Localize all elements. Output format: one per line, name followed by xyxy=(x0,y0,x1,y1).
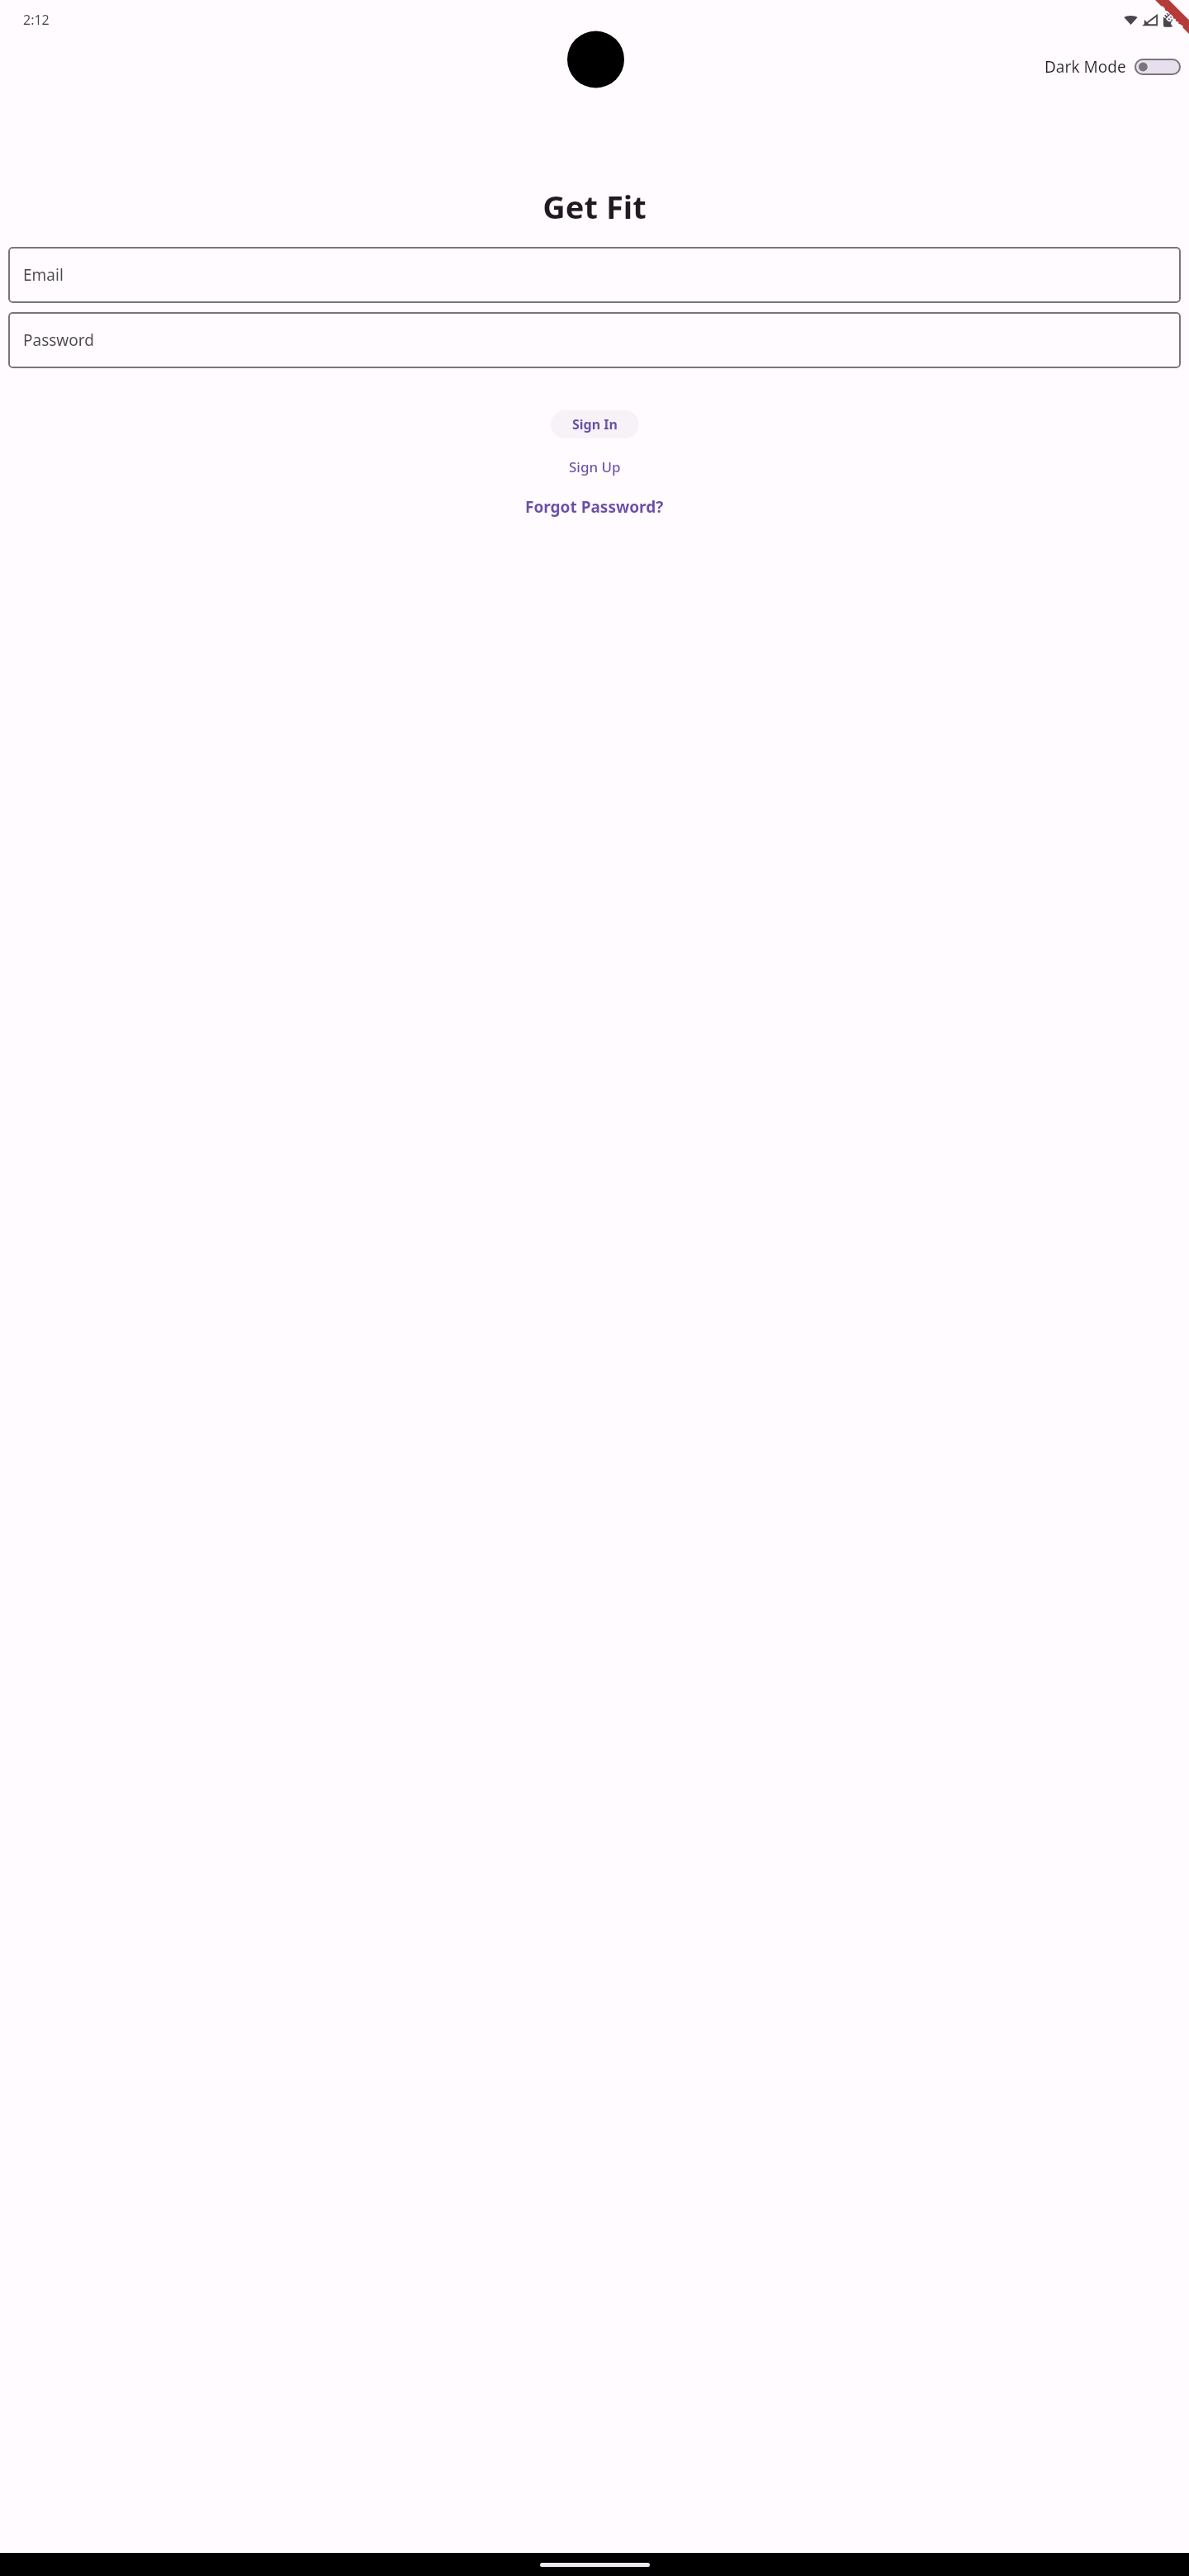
button[interactable]: Sign Up xyxy=(557,452,632,481)
staticText: DEBUG xyxy=(1155,3,1186,34)
staticText: 2:12 xyxy=(23,11,50,29)
button[interactable]: Toggle dark mode xyxy=(1135,59,1181,75)
button[interactable]: Dark Mode xyxy=(1041,53,1184,81)
staticText: Email xyxy=(23,264,64,286)
staticText: Dark Mode xyxy=(1045,56,1126,78)
staticText: Password xyxy=(23,329,94,351)
button[interactable]: Password xyxy=(8,312,1181,368)
staticText: Sign Up xyxy=(569,457,621,476)
staticText: Sign In xyxy=(572,415,618,433)
button[interactable]: Sign In xyxy=(551,410,639,438)
staticText: Get Fit xyxy=(0,185,1189,228)
button[interactable]: Email xyxy=(8,247,1181,303)
button[interactable]: Forgot Password? xyxy=(514,491,675,523)
staticText: Forgot Password? xyxy=(525,496,664,518)
